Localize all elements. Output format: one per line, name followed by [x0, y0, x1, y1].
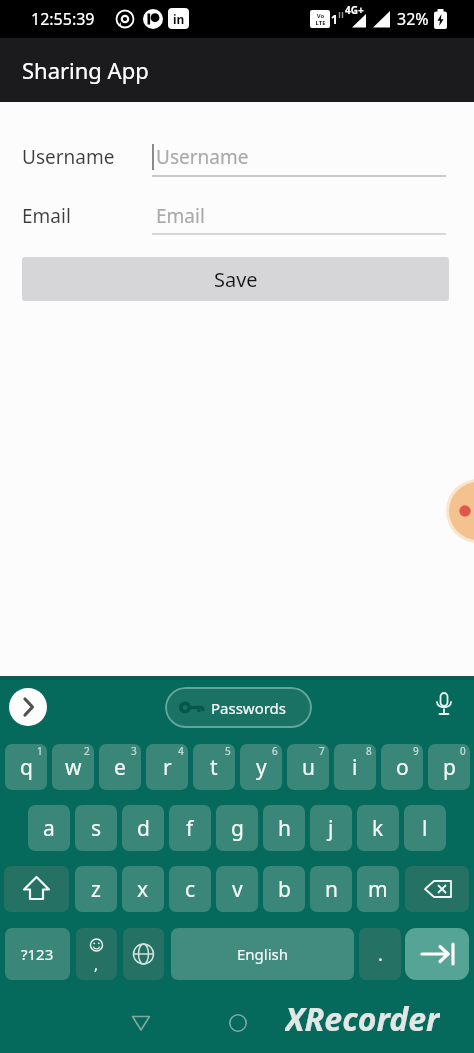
button[interactable]: a	[28, 805, 70, 851]
staticText: x	[137, 875, 149, 904]
button[interactable]: English	[171, 928, 354, 980]
staticText: j	[328, 814, 334, 843]
button[interactable]: Save	[22, 257, 449, 301]
button[interactable]	[4, 866, 69, 912]
staticText: 1	[37, 744, 43, 758]
button[interactable]: j	[310, 805, 352, 851]
staticText: 32%	[397, 8, 429, 30]
staticText: d	[137, 814, 150, 843]
button[interactable]: o	[381, 744, 423, 790]
staticText: Username	[22, 144, 115, 170]
button[interactable]	[434, 690, 454, 724]
staticText: Email	[22, 203, 71, 229]
staticText: b	[278, 875, 291, 904]
staticText: 6	[272, 744, 278, 758]
staticText: s	[91, 814, 102, 843]
staticText: Vo LTE	[315, 12, 326, 27]
staticText: y	[256, 753, 267, 782]
staticText: w	[65, 753, 82, 782]
staticText: k	[372, 814, 384, 843]
button[interactable]: f	[169, 805, 211, 851]
button[interactable]: y	[240, 744, 282, 790]
staticText: r	[163, 753, 172, 782]
staticText: 9	[413, 744, 419, 758]
staticText: 0	[460, 744, 466, 758]
staticText: ,	[94, 954, 99, 974]
button[interactable]: ,	[76, 928, 117, 980]
staticText: ?123	[21, 944, 54, 964]
button[interactable]	[130, 1012, 152, 1034]
staticText: Email	[156, 203, 205, 229]
staticText: 12:55:39	[31, 8, 95, 30]
button[interactable]: b	[263, 866, 305, 912]
staticText: 5	[225, 744, 231, 758]
staticText: q	[20, 753, 33, 782]
button[interactable]	[405, 928, 469, 980]
button[interactable]: m	[357, 866, 399, 912]
staticText: .	[378, 942, 383, 967]
staticText: m	[368, 875, 388, 904]
staticText: z	[91, 875, 101, 904]
button[interactable]	[9, 688, 47, 726]
button[interactable]: v	[216, 866, 258, 912]
staticText: a	[43, 814, 55, 843]
button[interactable]: d	[122, 805, 164, 851]
button[interactable]: .	[359, 928, 401, 980]
button[interactable]: p	[428, 744, 470, 790]
button[interactable]: e	[99, 744, 141, 790]
button[interactable]: g	[216, 805, 258, 851]
button[interactable]: r	[146, 744, 188, 790]
staticText: 7	[319, 744, 325, 758]
staticText: e	[114, 753, 126, 782]
button[interactable]	[227, 1012, 249, 1034]
button[interactable]: k	[357, 805, 399, 851]
staticText: c	[185, 875, 196, 904]
button[interactable]: x	[122, 866, 164, 912]
staticText: 3	[131, 744, 137, 758]
button[interactable]: t	[193, 744, 235, 790]
staticText: 1	[331, 11, 338, 27]
button[interactable]: s	[75, 805, 117, 851]
staticText: English	[237, 944, 289, 964]
staticText: Username	[156, 144, 249, 170]
button[interactable]: i	[334, 744, 376, 790]
button[interactable]: q	[5, 744, 47, 790]
button[interactable]: h	[263, 805, 305, 851]
staticText: t	[210, 753, 218, 782]
staticText: 8	[366, 744, 372, 758]
staticText: l	[422, 814, 428, 843]
staticText: 4	[178, 744, 184, 758]
button[interactable]	[123, 928, 164, 980]
button[interactable]: w	[52, 744, 94, 790]
staticText: f	[186, 814, 194, 843]
button[interactable]: ?123	[5, 928, 70, 980]
staticText: 2	[84, 744, 90, 758]
staticText: u	[302, 753, 315, 782]
staticText: Save	[214, 266, 258, 293]
staticText: n	[325, 875, 338, 904]
staticText: i	[352, 753, 358, 782]
staticText: 4G+	[345, 3, 364, 17]
staticText: o	[396, 753, 409, 782]
button[interactable]	[405, 866, 469, 912]
button[interactable]: z	[75, 866, 117, 912]
button[interactable]: Passwords	[165, 687, 312, 728]
button[interactable]: n	[310, 866, 352, 912]
staticText: in	[173, 11, 185, 27]
button[interactable]: u	[287, 744, 329, 790]
staticText: XRecorder	[285, 997, 440, 1037]
staticText: Sharing App	[22, 55, 149, 85]
button[interactable]: c	[169, 866, 211, 912]
staticText: p	[443, 753, 456, 782]
staticText: v	[232, 875, 243, 904]
button[interactable]: l	[404, 805, 446, 851]
staticText: Passwords	[211, 698, 287, 718]
staticText: h	[278, 814, 291, 843]
staticText: g	[231, 814, 244, 843]
